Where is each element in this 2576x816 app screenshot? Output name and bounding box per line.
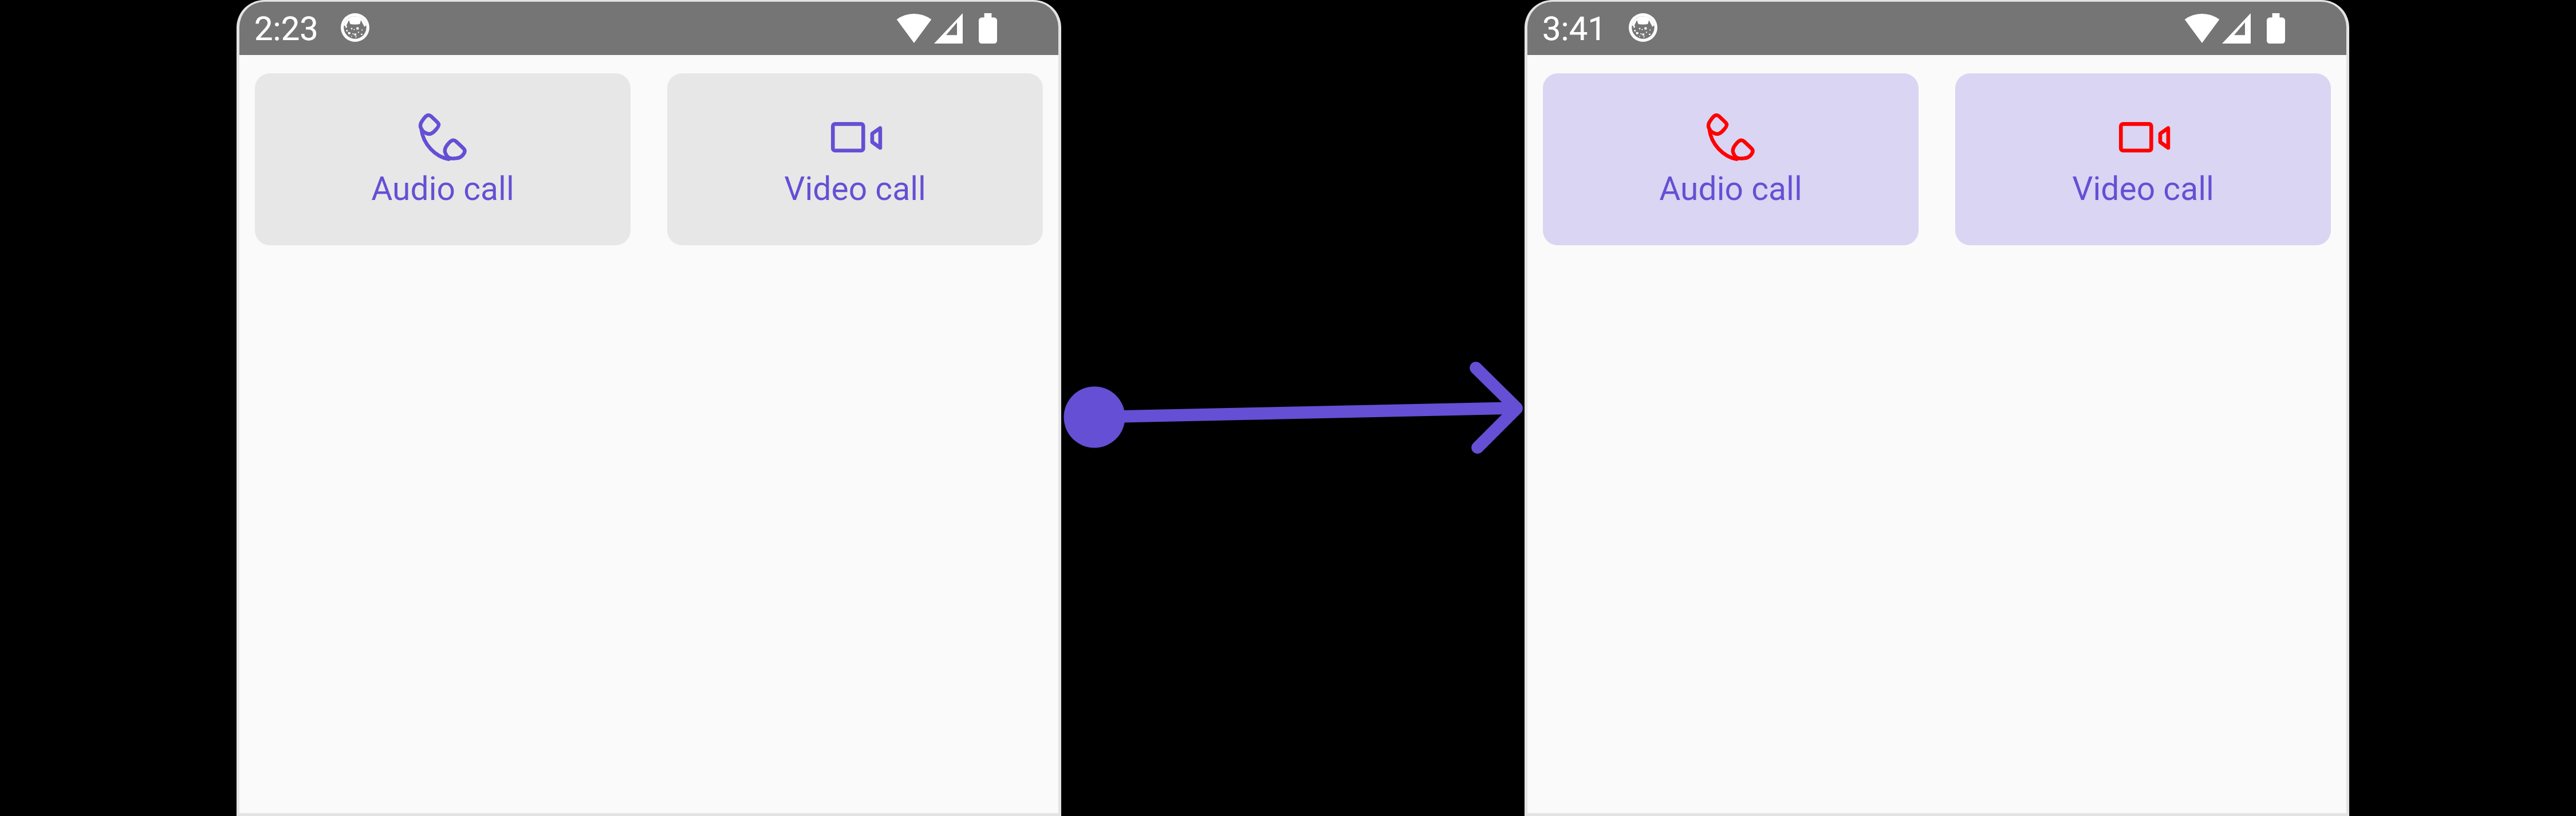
other: Audio call bbox=[419, 113, 467, 162]
other: Audio call bbox=[1707, 113, 1755, 162]
button[interactable]: Audio call bbox=[255, 73, 631, 245]
button[interactable]: Video call bbox=[667, 73, 1043, 245]
staticText: 3:41 bbox=[1542, 9, 1606, 48]
button[interactable]: Video call bbox=[1955, 73, 2331, 245]
button[interactable]: Audio call bbox=[1543, 73, 1919, 245]
staticText: Video call bbox=[2072, 170, 2214, 208]
staticText: Audio call bbox=[371, 170, 514, 208]
other: Video call bbox=[2119, 122, 2171, 152]
other: Video call bbox=[831, 122, 883, 152]
staticText: Video call bbox=[784, 170, 926, 208]
staticText: 2:23 bbox=[254, 9, 318, 48]
staticText: Audio call bbox=[1659, 170, 1802, 208]
